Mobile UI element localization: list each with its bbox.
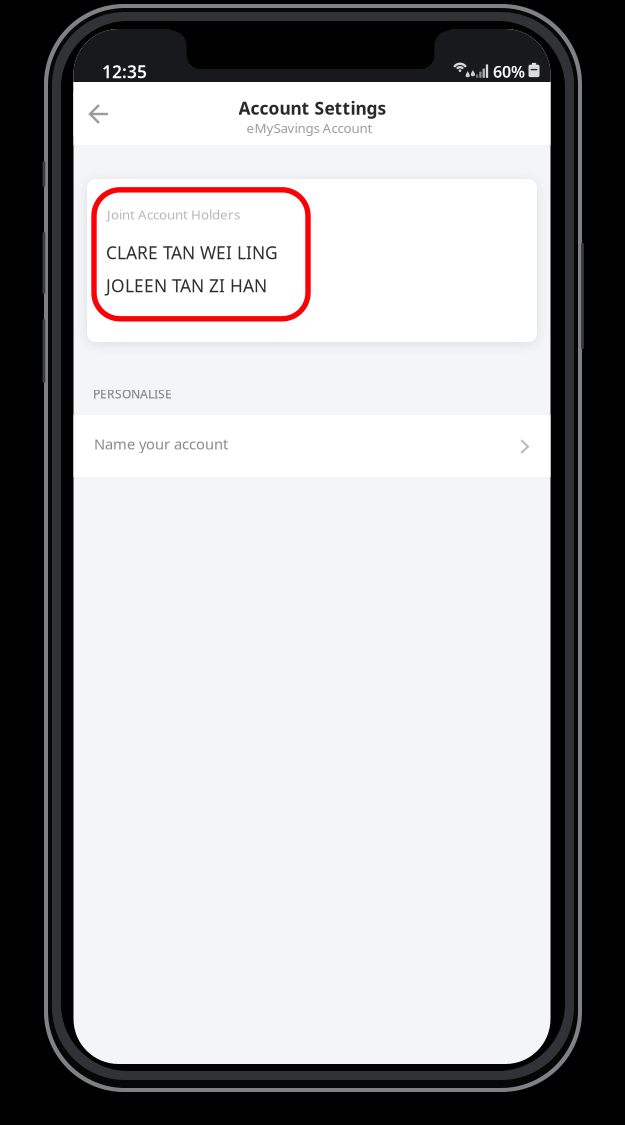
button[interactable]: Name your account	[73, 415, 550, 477]
staticText: 12:35	[102, 60, 147, 83]
staticText: 60%	[493, 61, 525, 82]
staticText: JOLEEN TAN ZI HAN	[106, 274, 267, 297]
staticText: Name your account	[94, 434, 228, 453]
button[interactable]: Back	[73, 92, 121, 136]
staticText: PERSONALISE	[93, 386, 172, 402]
staticText: CLARE TAN WEI LING	[106, 241, 278, 264]
staticText: Account Settings	[238, 96, 386, 119]
staticText: eMySavings Account	[246, 119, 372, 137]
staticText: Joint Account Holders	[107, 205, 240, 223]
